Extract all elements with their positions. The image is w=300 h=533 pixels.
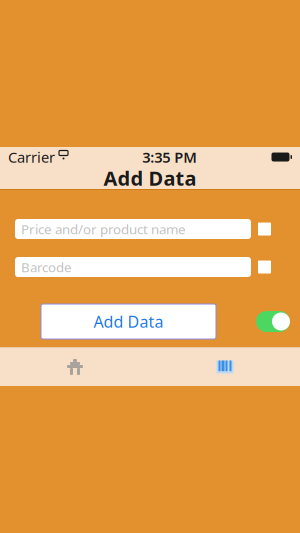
button[interactable]: Scan barcode [150, 348, 300, 386]
staticText: Barcode [21, 258, 72, 276]
button[interactable]: Add Data [41, 304, 216, 339]
button[interactable]: Home [0, 348, 150, 386]
button[interactable]: Enable option [256, 311, 290, 332]
staticText: Price and/or product name [21, 220, 186, 238]
staticText: Add Data [93, 311, 163, 332]
button[interactable]: Toggle barcode field [258, 260, 271, 273]
staticText: Carrier [8, 147, 55, 167]
staticText: Add Data [103, 165, 196, 191]
staticText: 3:35 PM [142, 147, 197, 167]
staticText [55, 147, 59, 167]
button[interactable]: Toggle price field [258, 222, 271, 235]
